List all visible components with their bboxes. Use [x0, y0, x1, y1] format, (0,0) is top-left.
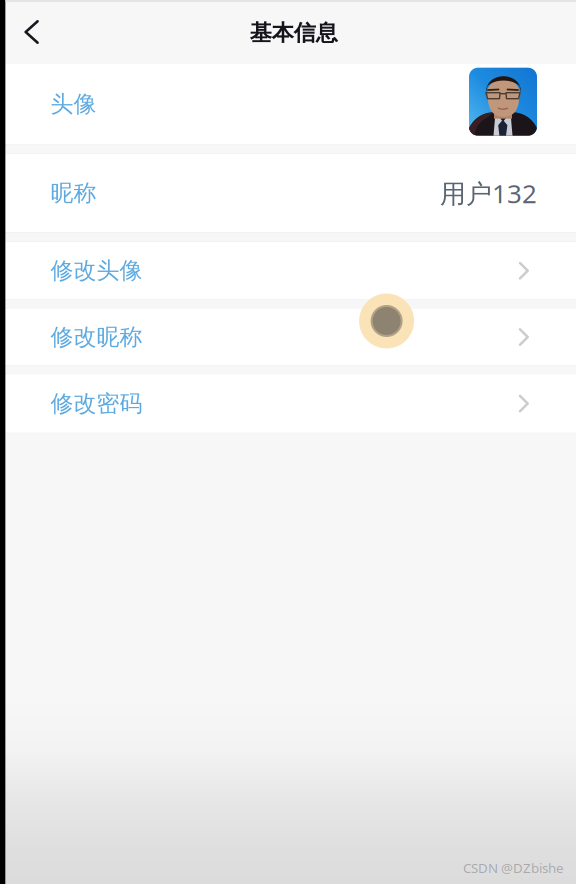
button[interactable]: Back	[6, 6, 58, 58]
staticText: 基本信息	[250, 19, 338, 47]
button[interactable]: 修改密码	[6, 375, 576, 432]
staticText: 昵称	[51, 179, 97, 208]
staticText: 用户132	[440, 176, 537, 211]
staticText: 修改昵称	[51, 323, 143, 351]
staticText: 头像	[51, 90, 97, 119]
button[interactable]: 修改头像	[6, 242, 576, 299]
staticText: 修改密码	[51, 389, 143, 418]
staticText: 修改头像	[51, 256, 143, 285]
staticText: CSDN @DZbishe	[463, 859, 564, 877]
button[interactable]: 修改昵称	[6, 309, 576, 365]
